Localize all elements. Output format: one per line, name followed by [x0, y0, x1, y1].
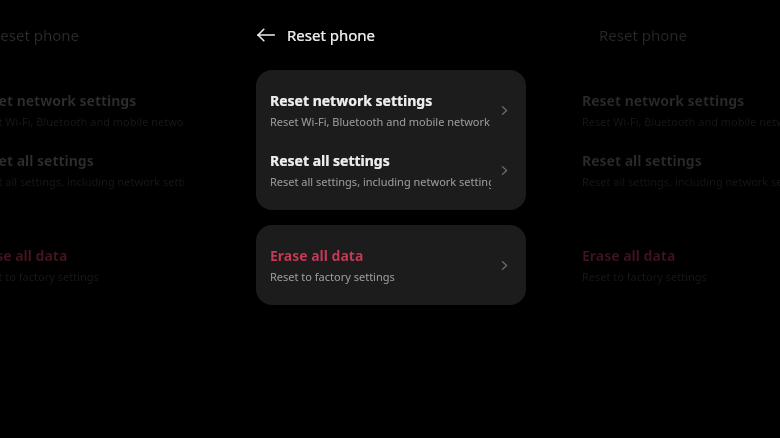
staticText: Reset to factory settings — [582, 269, 707, 284]
staticText: Reset phone — [0, 25, 80, 45]
staticText: Reset network settings — [582, 91, 745, 110]
button[interactable]: Erase all data — [256, 225, 526, 305]
button[interactable]: Reset all settings — [568, 129, 780, 210]
staticText: Reset Wi-Fi, Bluetooth and mobile networ… — [0, 114, 184, 129]
staticText: Reset phone — [287, 25, 376, 45]
staticText: Erase all data — [0, 246, 68, 265]
staticText: Reset Wi-Fi, Bluetooth and mobile networ… — [270, 114, 491, 129]
button[interactable]: Reset all settings — [256, 129, 526, 210]
staticText: Reset network settings — [0, 91, 137, 110]
staticText: Reset all settings — [0, 151, 94, 170]
staticText: Reset all settings — [270, 151, 390, 170]
button[interactable]: Erase all data — [0, 225, 198, 305]
button[interactable]: Reset network settings — [568, 70, 780, 129]
button[interactable]: Reset network settings — [0, 70, 198, 129]
staticText: Reset all settings, including network se… — [582, 174, 780, 189]
staticText: Reset to factory settings — [270, 269, 395, 284]
staticText: Reset Wi-Fi, Bluetooth and mobile networ… — [582, 114, 780, 129]
button[interactable]: Erase all data — [568, 225, 780, 305]
button[interactable]: Reset network settings — [256, 70, 526, 129]
staticText: Reset all settings, including network se… — [270, 174, 491, 189]
staticText: Erase all data — [582, 246, 676, 265]
staticText: Reset phone — [599, 25, 688, 45]
staticText: Reset all settings — [582, 151, 702, 170]
staticText: Erase all data — [270, 246, 364, 265]
button[interactable]: Reset all settings — [0, 129, 198, 210]
staticText: Reset to factory settings — [0, 269, 99, 284]
button[interactable]: Back — [253, 22, 279, 48]
staticText: Reset all settings, including network se… — [0, 174, 184, 189]
staticText: Reset network settings — [270, 91, 433, 110]
